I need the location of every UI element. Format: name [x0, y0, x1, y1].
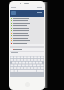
button[interactable]: [10, 27, 44, 30]
button[interactable]: [10, 34, 44, 37]
button[interactable]: [10, 37, 44, 40]
button[interactable]: [10, 17, 44, 20]
button[interactable]: [10, 29, 44, 32]
button[interactable]: [10, 19, 44, 22]
button[interactable]: [10, 32, 44, 35]
button[interactable]: [10, 22, 44, 25]
button[interactable]: [10, 24, 44, 27]
button[interactable]: [10, 39, 44, 42]
button[interactable]: [10, 10, 44, 17]
button[interactable]: Keyboard: [10, 56, 44, 77]
button[interactable]: [10, 48, 44, 51]
button[interactable]: [10, 42, 44, 45]
